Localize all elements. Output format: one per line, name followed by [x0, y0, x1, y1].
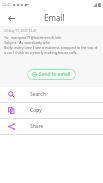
staticText: Send to email [39, 71, 71, 78]
staticText: 23 Aug 11, 2021 12:41 [4, 29, 37, 33]
button[interactable]: Back [4, 11, 18, 25]
button[interactable]: Send to email [27, 69, 76, 80]
staticText: 12:41 [2, 2, 11, 7]
button[interactable]: Share [0, 119, 103, 134]
staticText: Share [30, 123, 44, 130]
staticText: Email [44, 12, 65, 23]
staticText: Copy [30, 107, 42, 114]
staticText: To: marquise71@heidenreich.info [4, 35, 62, 40]
staticText: Subject: As somebody who [4, 40, 51, 45]
staticText: Search [30, 91, 46, 98]
button[interactable]: Search [0, 87, 103, 102]
button[interactable]: Copy [0, 103, 103, 118]
staticText: Body: every time I see a mattress strapp… [4, 45, 99, 55]
